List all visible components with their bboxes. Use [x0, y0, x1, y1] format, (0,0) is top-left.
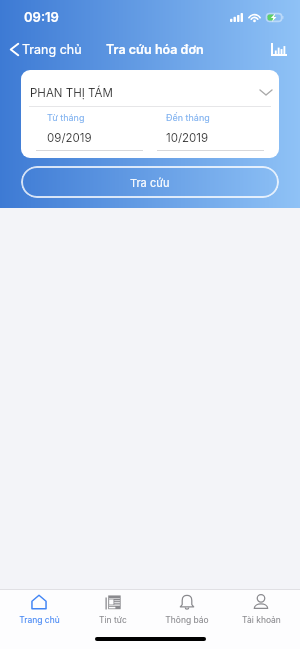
- staticText: 10/2019: [166, 131, 209, 145]
- staticText: Tin tức: [99, 615, 127, 625]
- button[interactable]: Đến tháng: [150, 112, 279, 151]
- staticText: PHAN THỊ TÁM: [30, 86, 113, 100]
- button[interactable]: Thống kê: [263, 37, 300, 62]
- staticText: Thông báo: [165, 615, 209, 625]
- staticText: Trang chủ: [22, 42, 82, 57]
- button[interactable]: PHAN THỊ TÁM: [21, 70, 279, 106]
- staticText: 09:19: [24, 9, 59, 25]
- button[interactable]: Thông báo: [152, 590, 222, 625]
- staticText: Tra cứu: [130, 176, 170, 189]
- staticText: Đến tháng: [166, 112, 210, 123]
- button[interactable]: Trang chủ: [0, 38, 88, 61]
- button[interactable]: Trang chủ: [4, 590, 74, 625]
- button[interactable]: Tin tức: [78, 590, 148, 625]
- button[interactable]: Tài khoản: [226, 590, 296, 625]
- button[interactable]: Từ tháng: [21, 112, 150, 151]
- staticText: Từ tháng: [47, 112, 85, 123]
- staticText: Tra cứu hóa đơn: [106, 42, 204, 57]
- button[interactable]: Tra cứu: [21, 166, 279, 198]
- staticText: Tài khoản: [242, 615, 281, 625]
- staticText: Trang chủ: [19, 615, 60, 625]
- staticText: 09/2019: [47, 131, 92, 145]
